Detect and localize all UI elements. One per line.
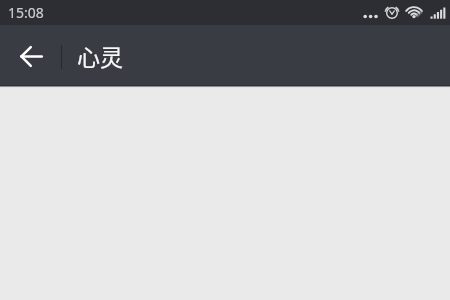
staticText: 15:08 <box>8 3 44 22</box>
button[interactable]: Navigate up <box>0 27 61 87</box>
staticText: 心灵 <box>77 39 123 72</box>
